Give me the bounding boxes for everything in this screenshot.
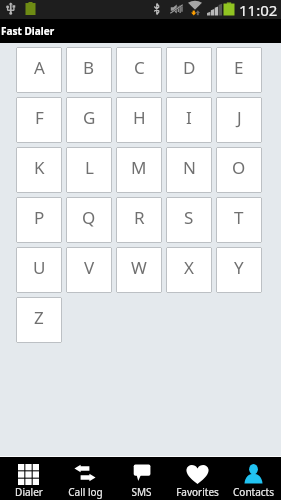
button[interactable]: Dialer	[0, 457, 57, 500]
button[interactable]: H	[116, 97, 162, 143]
staticText: L	[85, 156, 94, 179]
button[interactable]: Contacts	[225, 457, 281, 500]
staticText: U	[33, 256, 46, 279]
button[interactable]: M	[116, 147, 162, 193]
button[interactable]: C	[116, 47, 162, 93]
staticText: Z	[34, 306, 44, 329]
staticText: Favorites	[176, 485, 219, 499]
staticText: E	[234, 56, 244, 79]
staticText: H	[133, 106, 146, 129]
button[interactable]: V	[66, 247, 112, 293]
staticText: C	[134, 56, 145, 79]
button[interactable]: F	[16, 97, 62, 143]
button[interactable]: N	[166, 147, 212, 193]
button[interactable]: Q	[66, 197, 112, 243]
staticText: P	[34, 206, 45, 229]
staticText: Fast Dialer	[1, 24, 55, 38]
button[interactable]: T	[216, 197, 262, 243]
button[interactable]: P	[16, 197, 62, 243]
staticText: K	[34, 156, 45, 179]
button[interactable]: Y	[216, 247, 262, 293]
staticText: F	[35, 106, 44, 129]
button[interactable]: X	[166, 247, 212, 293]
staticText: R	[134, 206, 145, 229]
button[interactable]: K	[16, 147, 62, 193]
staticText: V	[84, 256, 95, 279]
staticText: I	[186, 106, 192, 129]
staticText: Contacts	[233, 485, 274, 499]
staticText: Call log	[68, 485, 103, 499]
button[interactable]: SMS	[113, 457, 169, 500]
staticText: S	[184, 206, 194, 229]
button[interactable]: G	[66, 97, 112, 143]
staticText: T	[234, 206, 244, 229]
staticText: B	[83, 56, 95, 79]
button[interactable]: Call log	[57, 457, 113, 500]
button[interactable]: L	[66, 147, 112, 193]
button[interactable]: U	[16, 247, 62, 293]
button[interactable]: J	[216, 97, 262, 143]
button[interactable]: D	[166, 47, 212, 93]
button[interactable]: R	[116, 197, 162, 243]
button[interactable]: W	[116, 247, 162, 293]
button[interactable]: A	[16, 47, 62, 93]
button[interactable]: S	[166, 197, 212, 243]
button[interactable]: Z	[16, 297, 62, 343]
button[interactable]: E	[216, 47, 262, 93]
staticText: Y	[234, 256, 244, 279]
staticText: A	[34, 56, 45, 79]
staticText: O	[232, 156, 246, 179]
button[interactable]: Favorites	[169, 457, 225, 500]
button[interactable]: O	[216, 147, 262, 193]
staticText: 11:02	[239, 0, 278, 19]
staticText: SMS	[131, 485, 152, 499]
button[interactable]: B	[66, 47, 112, 93]
staticText: N	[183, 156, 196, 179]
staticText: W	[131, 256, 147, 279]
staticText: X	[184, 256, 194, 279]
staticText: J	[237, 106, 242, 129]
staticText: G	[83, 106, 96, 129]
staticText: Dialer	[15, 485, 43, 499]
staticText: Q	[82, 206, 96, 229]
button[interactable]: I	[166, 97, 212, 143]
staticText: D	[183, 56, 196, 79]
staticText: M	[131, 156, 147, 179]
